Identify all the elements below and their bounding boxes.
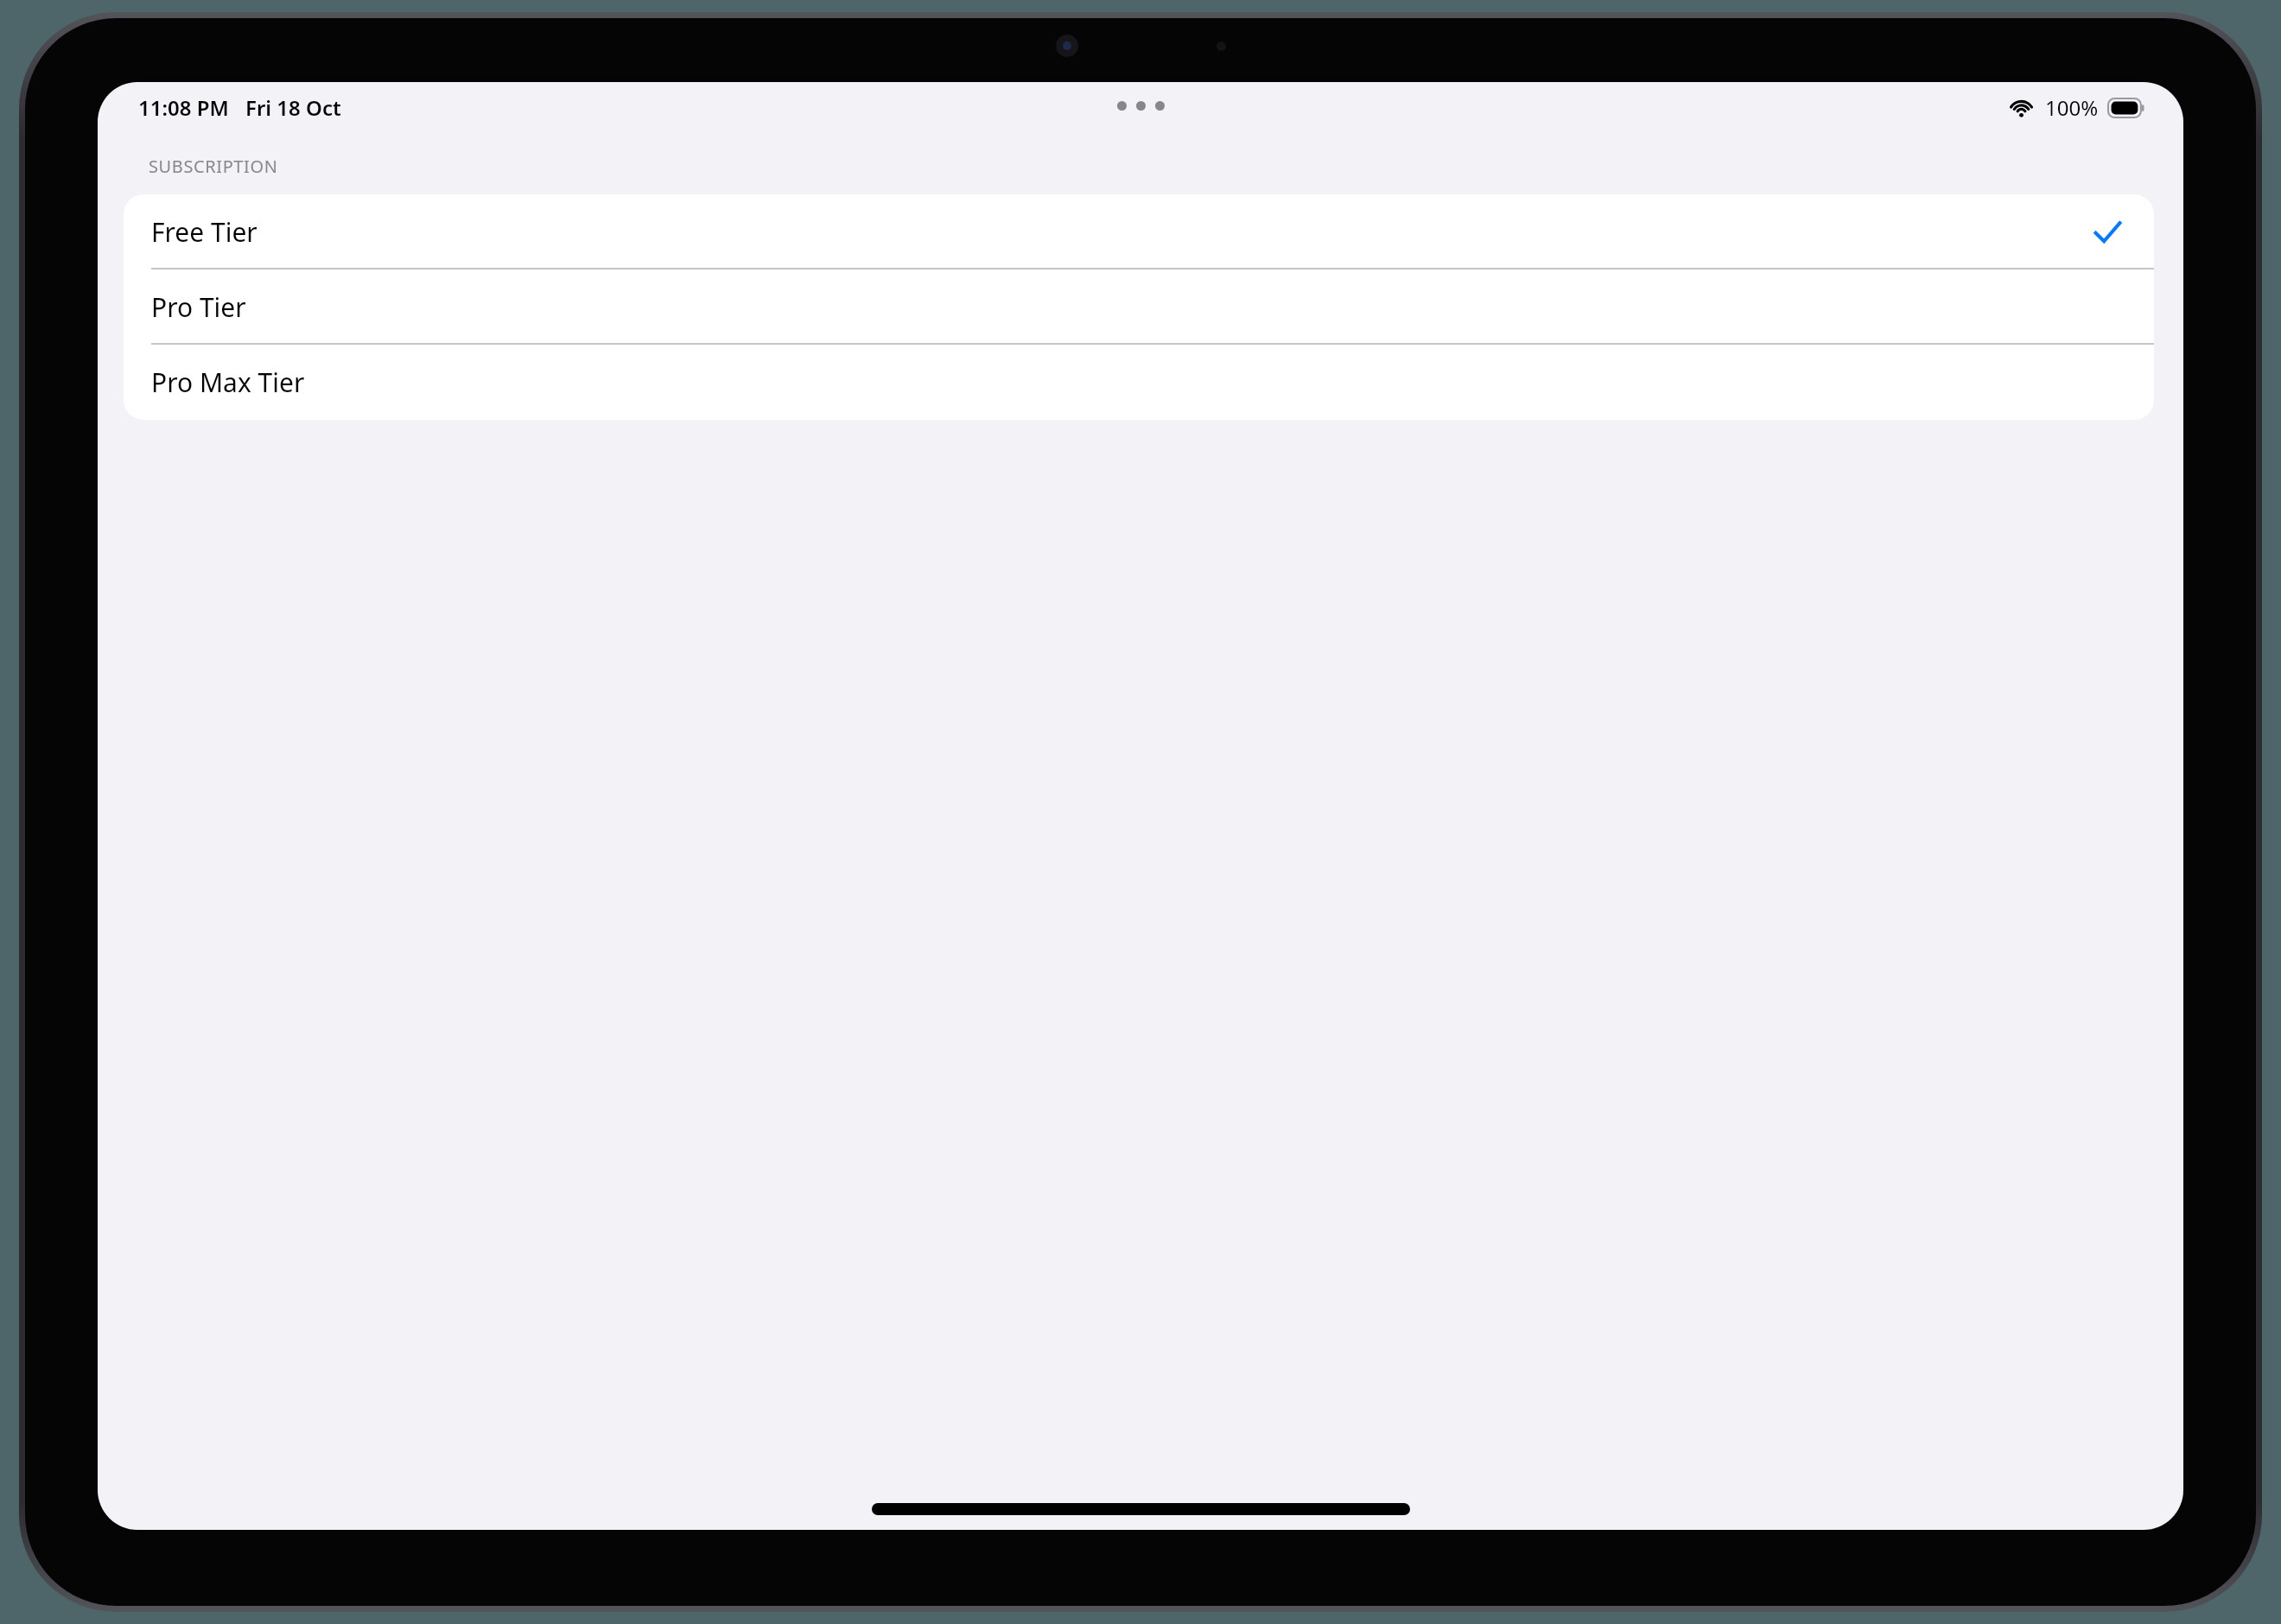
staticText: 100% xyxy=(2045,93,2099,122)
staticText: 11:08 PM xyxy=(138,93,229,122)
staticText: Free Tier xyxy=(151,214,257,250)
staticText: Pro Tier xyxy=(151,289,246,325)
other: Selected xyxy=(2094,219,2121,246)
button[interactable]: Pro Tier xyxy=(124,270,2154,345)
staticText: SUBSCRIPTION xyxy=(149,155,278,178)
staticText: Fri 18 Oct xyxy=(245,93,341,122)
staticText: Pro Max Tier xyxy=(151,365,305,400)
button[interactable]: Free Tier xyxy=(124,194,2154,270)
button[interactable]: Pro Max Tier xyxy=(124,345,2154,420)
